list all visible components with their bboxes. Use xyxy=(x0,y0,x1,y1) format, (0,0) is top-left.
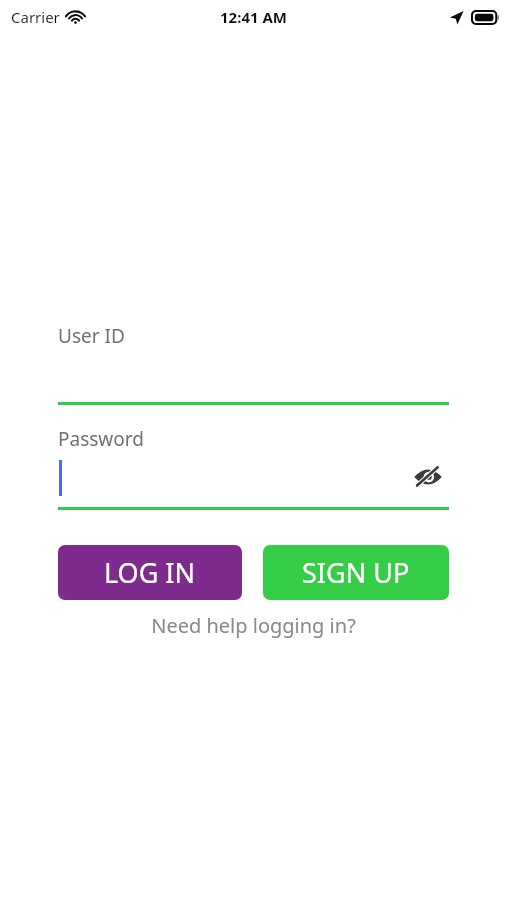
staticText: 12:41 AM xyxy=(220,7,287,27)
staticText: LOG IN xyxy=(104,554,196,591)
staticText: SIGN UP xyxy=(302,554,410,591)
button[interactable]: Show password xyxy=(407,456,449,498)
staticText: Need help logging in? xyxy=(151,612,356,639)
button[interactable]: User ID xyxy=(58,323,449,405)
staticText: Password xyxy=(58,426,144,452)
button[interactable]: Need help logging in? xyxy=(0,612,507,639)
staticText: Carrier xyxy=(11,7,60,27)
button[interactable]: LOG IN xyxy=(58,545,242,600)
button[interactable]: SIGN UP xyxy=(263,545,449,600)
staticText: User ID xyxy=(58,323,125,349)
